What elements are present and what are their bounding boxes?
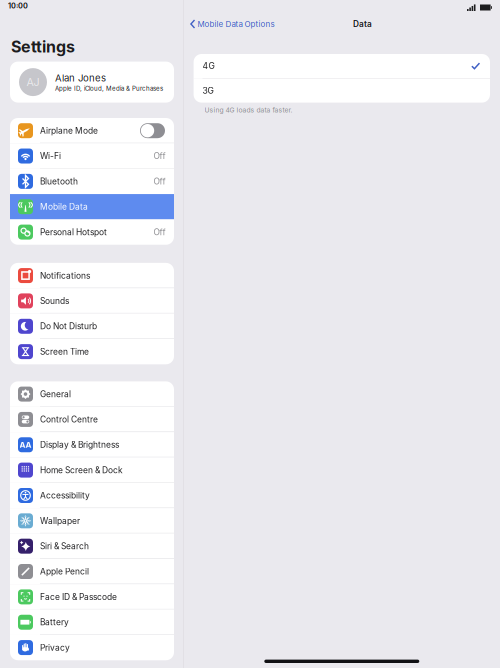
staticText: Do Not Disturb — [40, 321, 97, 331]
button[interactable]: Bluetooth — [10, 169, 174, 194]
button[interactable]: Airplane Mode — [10, 118, 174, 143]
button[interactable]: Siri & Search — [10, 533, 174, 559]
staticText: Using 4G loads data faster. — [205, 106, 293, 114]
button[interactable]: Wallpaper — [10, 508, 174, 533]
staticText: Apple ID, iCloud, Media & Purchases — [55, 85, 163, 92]
button[interactable]: Sounds — [10, 288, 174, 314]
staticText: Notifications — [40, 270, 90, 281]
button[interactable]: Face ID & Passcode — [10, 584, 174, 610]
staticText: Bluetooth — [40, 176, 78, 186]
button[interactable]: Do Not Disturb — [10, 314, 174, 339]
staticText: Airplane Mode — [40, 126, 98, 136]
button[interactable]: Apple Pencil — [10, 559, 174, 584]
button[interactable]: Home Screen & Dock — [10, 457, 174, 483]
button[interactable]: Accessibility — [10, 483, 174, 508]
staticText: Off — [154, 227, 166, 237]
button[interactable]: Mobile Data Options — [184, 15, 279, 33]
button[interactable]: Screen Time — [10, 339, 174, 364]
staticText: Home Screen & Dock — [40, 465, 123, 475]
staticText: Off — [154, 151, 166, 161]
button[interactable]: Personal Hotspot — [10, 219, 174, 245]
button[interactable]: Control Centre — [10, 407, 174, 432]
button[interactable]: Mobile Data — [10, 194, 174, 219]
staticText: 4G — [203, 61, 215, 71]
staticText: Screen Time — [40, 346, 89, 357]
button[interactable]: AA — [10, 432, 174, 457]
button[interactable]: Wi-Fi — [10, 143, 174, 169]
staticText: Alan Jones — [55, 72, 106, 84]
staticText: Face ID & Passcode — [40, 592, 117, 602]
staticText: Mobile Data — [40, 202, 88, 212]
button[interactable]: Notifications — [10, 263, 174, 288]
staticText: Apple Pencil — [40, 566, 89, 577]
button[interactable]: Battery — [10, 609, 174, 635]
button[interactable]: General — [10, 381, 174, 407]
staticText: AJ — [26, 76, 39, 88]
staticText: 10:00 — [8, 1, 28, 10]
button[interactable]: Privacy — [10, 635, 174, 660]
staticText: Settings — [11, 37, 75, 56]
staticText: AA — [19, 440, 31, 450]
staticText: Battery — [40, 617, 69, 627]
staticText: Display & Brightness — [40, 440, 119, 450]
staticText: Sounds — [40, 296, 69, 306]
staticText: Control Centre — [40, 414, 98, 424]
staticText: Wallpaper — [40, 516, 80, 526]
staticText: Personal Hotspot — [40, 227, 107, 237]
button[interactable]: 3G — [194, 79, 490, 103]
staticText: Wi-Fi — [40, 151, 61, 161]
staticText: Accessibility — [40, 490, 90, 501]
button[interactable]: AJ — [10, 62, 174, 103]
staticText: General — [40, 389, 71, 399]
staticText: Off — [154, 176, 166, 186]
button[interactable]: 4G — [194, 54, 490, 78]
staticText: Siri & Search — [40, 541, 89, 551]
staticText: Privacy — [40, 642, 70, 653]
staticText: Data — [353, 19, 372, 29]
staticText: Mobile Data Options — [198, 19, 275, 29]
staticText: 3G — [203, 85, 214, 96]
